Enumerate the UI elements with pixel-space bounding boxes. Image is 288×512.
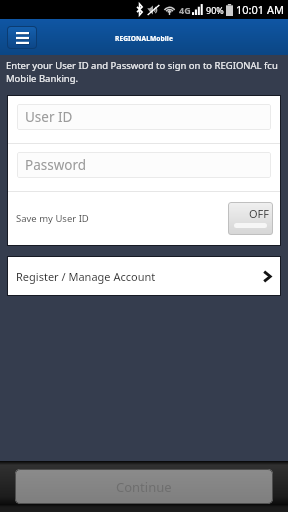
button[interactable]: Open navigation menu — [8, 27, 36, 48]
staticText: REGIONALMobile — [115, 34, 173, 43]
button[interactable]: Save my User ID, off — [228, 202, 273, 235]
staticText: Save my User ID — [16, 212, 89, 225]
staticText: Register / Manage Account — [16, 269, 156, 284]
staticText: Enter your User ID and Password to sign … — [6, 59, 284, 85]
staticText: 10:01 AM — [236, 2, 284, 17]
staticText: User ID — [25, 108, 73, 126]
staticText: OFF — [249, 206, 270, 221]
button[interactable]: Register / Manage Account — [8, 257, 280, 295]
staticText: Continue — [116, 478, 172, 496]
staticText: 90% — [206, 4, 224, 16]
button[interactable]: User ID — [17, 104, 271, 130]
staticText: Password — [25, 156, 87, 174]
staticText: 4G — [179, 4, 191, 16]
button[interactable]: Password — [17, 152, 271, 178]
button[interactable]: Continue — [15, 469, 273, 504]
